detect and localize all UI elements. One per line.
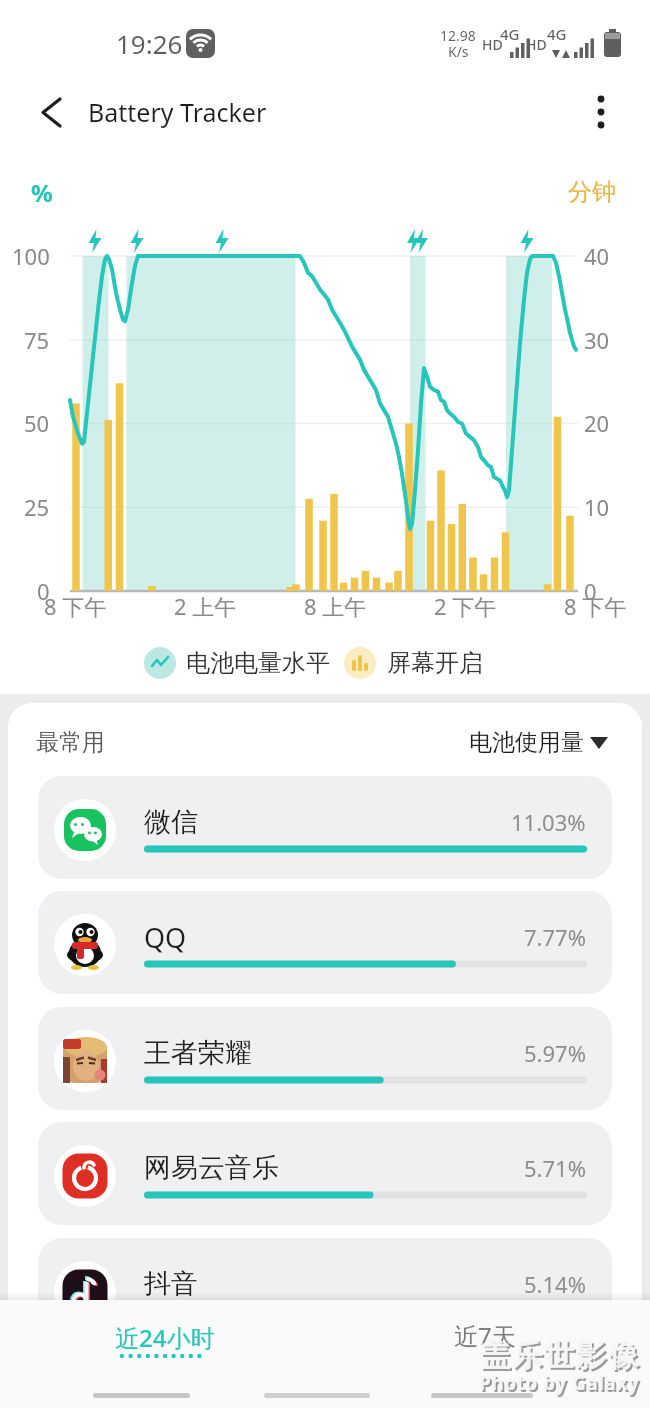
staticText: 8 下午 [44,591,107,621]
staticText: 近24小时 [115,1321,215,1354]
button[interactable]: 近7天 [420,1307,550,1363]
staticText: 王者荣耀 [144,1036,252,1070]
staticText: 12.98 [440,26,476,45]
staticText: 8 下午 [564,591,627,621]
button[interactable] [580,90,624,136]
staticText: 屏幕开启 [387,648,483,678]
staticText: 4G [547,24,567,44]
staticText: HD [526,35,547,54]
button[interactable] [38,1238,612,1341]
staticText: 20 [584,408,610,438]
button[interactable] [38,1007,612,1110]
staticText: 2 上午 [174,591,237,621]
staticText: Battery Tracker [88,95,267,129]
button[interactable] [38,891,612,994]
staticText: 7.77% [524,922,586,952]
staticText: 抖音 [144,1267,198,1301]
staticText: 75 [24,325,50,355]
staticText: 网易云音乐 [144,1151,279,1185]
staticText: 5.71% [524,1153,586,1183]
button[interactable] [38,1122,612,1225]
staticText: 微信 [144,805,198,839]
button[interactable]: 电池使用量 [404,720,584,764]
staticText: 分钟 [568,177,616,207]
staticText: 盖乐世影像 [479,1337,639,1375]
staticText: K/s [448,42,469,61]
button[interactable]: 近24小时 [100,1307,230,1367]
staticText: 11.03% [511,807,586,837]
staticText: 5.97% [524,1038,586,1068]
staticText: Photo by Galaxy [479,1370,640,1396]
staticText: 0 [37,576,50,606]
staticText: 30 [584,325,610,355]
button[interactable] [38,776,612,879]
staticText: 19:26 [116,26,183,61]
staticText: 10 [584,492,610,522]
staticText: Photo by Galaxy [481,1372,642,1398]
button[interactable] [28,90,74,136]
staticText: 近7天 [454,1319,516,1352]
staticText: 2 下午 [434,591,497,621]
staticText: 8 上午 [304,591,367,621]
staticText: 50 [24,408,50,438]
staticText: 4G [500,24,520,44]
staticText: HD [482,35,503,54]
staticText: % [31,176,53,209]
staticText: 100 [12,241,50,271]
staticText: 最常用 [36,728,105,757]
staticText: 盖乐世影像 [481,1339,641,1377]
staticText: 40 [584,241,610,271]
staticText: 电池电量水平 [186,648,330,678]
staticText: QQ [144,919,187,956]
staticText: 25 [24,492,50,522]
staticText: 0 [584,576,597,606]
staticText: 5.14% [524,1269,586,1299]
staticText: 电池使用量 [469,728,584,757]
